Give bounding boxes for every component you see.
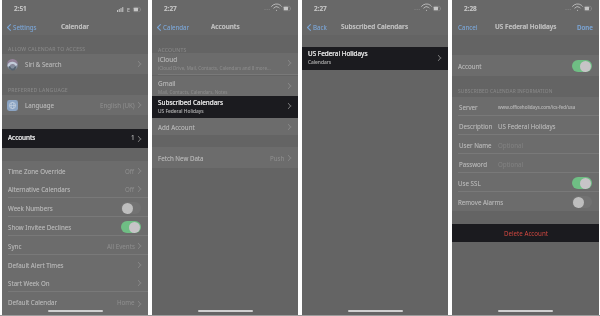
staticText: Default Calendar — [8, 298, 57, 306]
button[interactable]: Account — [452, 55, 599, 76]
staticText: SUBSCRIBED CALENDAR INFORMATION — [458, 88, 553, 95]
staticText: Back — [313, 23, 327, 31]
button[interactable]: Fetch New Data — [152, 147, 298, 168]
button[interactable]: Off — [121, 202, 141, 214]
button[interactable]: Delete Account — [452, 224, 599, 242]
staticText: Start Week On — [8, 279, 50, 287]
staticText: Accounts — [211, 22, 240, 31]
button[interactable]: Password — [452, 154, 599, 173]
button[interactable]: Remove Alarms — [452, 192, 599, 211]
staticText: Subscribed Calendars — [158, 98, 223, 107]
staticText: Fetch New Data — [158, 154, 204, 162]
button[interactable]: Language — [2, 95, 148, 115]
button[interactable]: Sync — [2, 236, 148, 255]
staticText: Alternative Calendars — [8, 185, 71, 193]
staticText: Gmail — [158, 79, 176, 88]
staticText: English (UK) — [100, 101, 135, 109]
staticText: Description — [459, 122, 493, 130]
staticText: Calendar — [163, 23, 190, 31]
button[interactable]: Siri & Search — [2, 54, 148, 74]
button[interactable]: Use SSL — [452, 173, 599, 192]
staticText: Account — [458, 62, 482, 70]
staticText: Home — [117, 298, 135, 306]
staticText: Language — [25, 101, 54, 109]
button[interactable]: Time Zone Override — [2, 161, 148, 180]
staticText: Add Account — [158, 123, 195, 131]
button[interactable]: Subscribed Calendars — [152, 96, 298, 118]
staticText: PREFERRED LANGUAGE — [8, 86, 68, 93]
staticText: Push — [270, 154, 285, 162]
button[interactable]: User Name — [452, 135, 599, 154]
staticText: Sync — [8, 242, 22, 250]
button[interactable]: On — [121, 221, 141, 233]
staticText: ALLOW CALENDAR TO ACCESS — [8, 45, 86, 52]
staticText: Server — [459, 103, 478, 111]
staticText: 1 — [131, 133, 135, 142]
staticText: Optional — [498, 160, 524, 168]
staticText: www.officeholidays.com/ics-fed/usa — [498, 104, 576, 110]
staticText: Off — [125, 167, 135, 175]
button[interactable]: Back — [306, 21, 328, 33]
button[interactable]: Start Week On — [2, 273, 148, 292]
button[interactable]: Accounts — [2, 129, 148, 148]
staticText: Done — [577, 23, 593, 31]
staticText: Optional — [498, 141, 524, 149]
staticText: US Federal Holidays — [158, 108, 204, 115]
staticText: Mail, Contacts, Calendars, Notes — [158, 89, 228, 95]
staticText: Cancel — [458, 23, 478, 31]
staticText: Settings — [13, 23, 37, 31]
button[interactable]: Default Alert Times — [2, 255, 148, 274]
staticText: Subscribed Calendars — [341, 22, 409, 31]
staticText: 2:27 — [164, 4, 177, 13]
staticText: iCloud — [158, 55, 178, 64]
staticText: Show Invitee Declines — [8, 223, 72, 231]
button[interactable]: Calendar — [156, 21, 191, 33]
staticText: Siri & Search — [25, 60, 62, 68]
button[interactable]: Description — [452, 116, 599, 135]
staticText: Use SSL — [458, 179, 481, 187]
staticText: 2:27 — [314, 4, 327, 13]
button[interactable]: iCloud — [152, 53, 298, 75]
button[interactable]: Off — [572, 196, 592, 208]
staticText: Week Numbers — [8, 204, 53, 212]
staticText: US Federal Holidays — [308, 49, 368, 58]
staticText: Remove Alarms — [458, 198, 504, 206]
staticText: Time Zone Override — [8, 167, 66, 175]
staticText: User Name — [459, 141, 492, 149]
staticText: iCloud Drive, Mail, Contacts, Calendars … — [158, 65, 271, 71]
staticText: Calendars — [308, 59, 331, 66]
staticText: All Events — [107, 242, 135, 250]
staticText: E — [127, 6, 130, 13]
button[interactable]: Gmail — [152, 76, 298, 97]
staticText: 2:51 — [14, 4, 27, 13]
button[interactable]: Default Calendar — [2, 292, 148, 315]
staticText: Password — [459, 160, 487, 168]
button[interactable]: Add Account — [152, 118, 298, 135]
button[interactable]: US Federal Holidays — [302, 47, 448, 70]
staticText: US Federal Holidays — [495, 22, 557, 31]
staticText: Default Alert Times — [8, 261, 64, 269]
staticText: US Federal Holidays — [498, 122, 556, 130]
staticText: Calendar — [61, 22, 89, 31]
staticText: Delete Account — [504, 229, 548, 237]
button[interactable]: Alternative Calendars — [2, 179, 148, 198]
staticText: Off — [125, 185, 135, 193]
button[interactable]: Show Invitee Declines — [2, 217, 148, 236]
button[interactable]: Cancel — [457, 21, 479, 33]
button[interactable]: Done — [576, 21, 594, 33]
staticText: 2:28 — [464, 4, 477, 13]
button[interactable]: On — [572, 177, 592, 189]
button[interactable]: Settings — [6, 21, 38, 33]
button[interactable]: Server — [452, 97, 599, 116]
button[interactable]: On — [572, 60, 592, 72]
staticText: ACCOUNTS — [158, 46, 187, 53]
staticText: Accounts — [8, 133, 36, 142]
button[interactable]: Week Numbers — [2, 198, 148, 217]
